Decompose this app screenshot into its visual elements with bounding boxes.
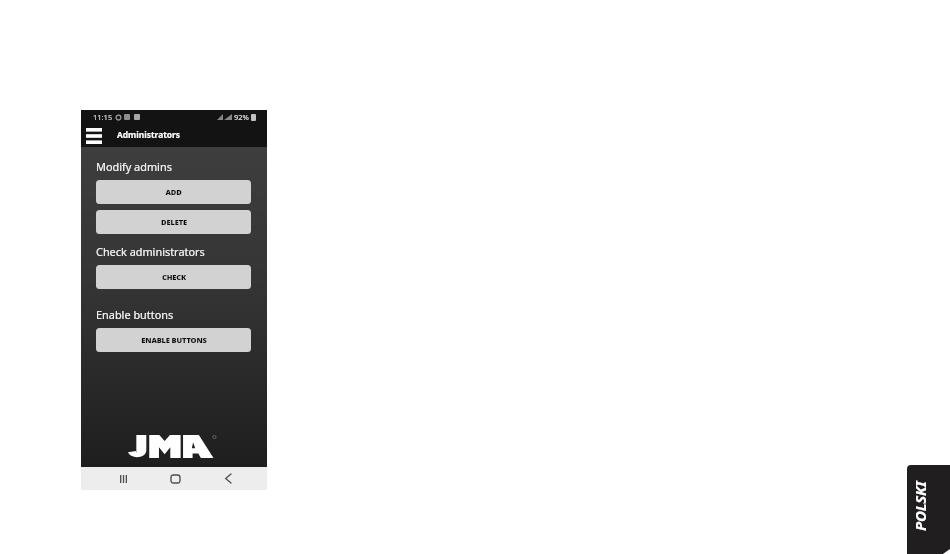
staticText: Administrators bbox=[117, 129, 181, 140]
staticText: Check administrators bbox=[96, 244, 205, 259]
button[interactable]: DELETE bbox=[96, 210, 251, 234]
staticText: Modify admins bbox=[96, 159, 172, 174]
staticText: CHECK bbox=[162, 272, 186, 282]
button[interactable]: ADD bbox=[96, 180, 251, 204]
button[interactable]: POLSKI bbox=[907, 465, 950, 554]
staticText: ENABLE BUTTONS bbox=[141, 335, 207, 345]
staticText: POLSKI bbox=[910, 481, 930, 531]
button[interactable]: Home bbox=[164, 467, 187, 490]
button[interactable]: Back bbox=[216, 467, 239, 490]
staticText: 92% bbox=[234, 112, 249, 122]
button[interactable]: ENABLE BUTTONS bbox=[96, 328, 251, 352]
staticText: ADD bbox=[165, 187, 182, 197]
staticText: DELETE bbox=[161, 217, 187, 227]
staticText: 11:15 bbox=[93, 112, 113, 122]
button[interactable]: Recent apps bbox=[112, 467, 135, 490]
button[interactable]: CHECK bbox=[96, 265, 251, 289]
button[interactable]: Open navigation drawer bbox=[81, 124, 117, 147]
staticText: Enable buttons bbox=[96, 307, 174, 322]
